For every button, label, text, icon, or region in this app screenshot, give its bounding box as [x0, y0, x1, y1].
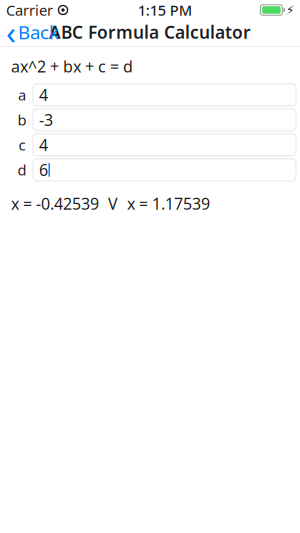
- button[interactable]: -3: [33, 109, 296, 131]
- button[interactable]: 4: [33, 134, 296, 156]
- staticText: d: [17, 160, 26, 180]
- button[interactable]: ‹: [0, 20, 65, 44]
- staticText: ‹: [6, 11, 16, 53]
- staticText: b: [17, 110, 26, 130]
- staticText: -3: [39, 109, 53, 130]
- staticText: x = -0.42539: [11, 193, 99, 214]
- staticText: 4: [39, 84, 48, 105]
- staticText: a: [18, 85, 26, 105]
- staticText: 4: [39, 134, 48, 155]
- staticText: ABC Formula Calculator: [49, 20, 251, 43]
- staticText: Back: [18, 20, 59, 44]
- button[interactable]: 4: [33, 84, 296, 106]
- staticText: Carrier: [6, 0, 53, 20]
- staticText: 1:15 PM: [138, 0, 192, 20]
- staticText: V: [108, 193, 118, 214]
- staticText: x = 1.17539: [127, 193, 210, 214]
- staticText: ax^2 + bx + c = d: [11, 56, 133, 77]
- staticText: c: [18, 135, 25, 155]
- button[interactable]: 6: [33, 159, 296, 181]
- staticText: ⚡︎: [286, 3, 294, 17]
- staticText: 6: [39, 159, 48, 180]
